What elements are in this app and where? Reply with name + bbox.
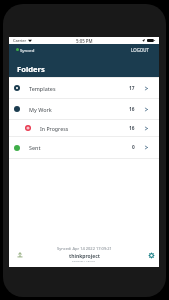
button[interactable]: Templates [9, 78, 159, 98]
staticText: 0 [132, 144, 135, 151]
staticText: Templates [29, 85, 56, 92]
staticText: Synced: Apr 14 2022 17:09:21 [57, 246, 112, 251]
button[interactable]: In Progress [9, 120, 159, 136]
button[interactable]: Sent [9, 137, 159, 158]
staticText: thinkproject [69, 253, 100, 260]
button[interactable]: Upload [15, 250, 25, 260]
staticText: 5:05 PM [76, 38, 93, 44]
staticText: My Work [29, 106, 52, 113]
staticText: In Progress [40, 125, 69, 132]
staticText: Sent [29, 144, 41, 151]
staticText: 16 [129, 106, 135, 113]
button[interactable]: My Work [9, 99, 159, 119]
staticText: LOGOUT [131, 47, 149, 53]
button[interactable]: LOGOUT [125, 45, 159, 55]
staticText: Carrier [13, 38, 27, 43]
staticText: Synced [20, 47, 35, 53]
staticText: 17 [129, 85, 135, 92]
staticText: FORMERLY CEMAR [72, 260, 96, 263]
button[interactable]: Settings [146, 250, 156, 260]
staticText: Folders [17, 64, 45, 74]
staticText: 16 [129, 125, 135, 132]
